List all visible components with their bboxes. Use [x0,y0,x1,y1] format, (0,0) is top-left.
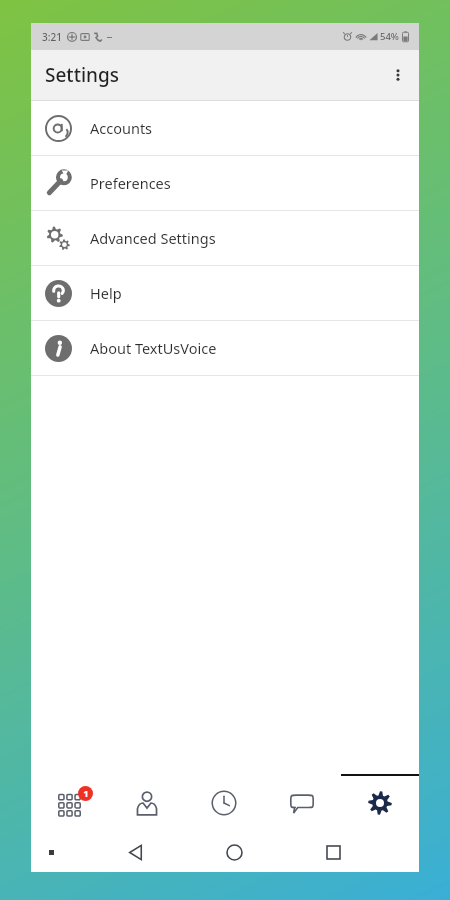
button[interactable]: Recent apps [284,832,383,872]
staticText: Settings [45,62,119,88]
button[interactable]: Recents [185,774,263,832]
button[interactable]: More options [377,54,419,96]
button[interactable]: Back [87,832,185,872]
button[interactable]: About TextUsVoice [31,321,419,375]
staticText: 54% [380,30,399,43]
staticText: Accounts [90,118,153,138]
button[interactable]: Accounts [31,101,419,155]
button[interactable]: Home [185,832,284,872]
staticText: Help [90,283,122,303]
staticText: 1 [83,787,89,800]
button[interactable]: Messages [263,774,341,832]
staticText: 3:21 [42,30,62,44]
staticText: About TextUsVoice [90,338,217,358]
button[interactable]: Preferences [31,156,419,210]
staticText: Advanced Settings [90,228,216,248]
button[interactable]: Keypad [31,774,108,832]
button[interactable]: Settings [341,774,419,832]
staticText: Preferences [90,173,171,193]
button[interactable]: Advanced Settings [31,211,419,265]
button[interactable]: Contacts [108,774,185,832]
button[interactable]: Help [31,266,419,320]
